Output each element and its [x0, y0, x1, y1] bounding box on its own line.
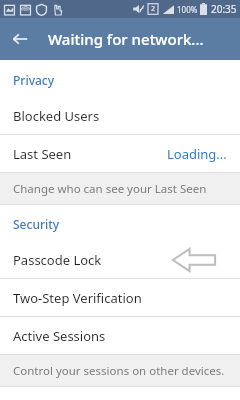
button[interactable]: Two-Step Verification	[0, 279, 240, 316]
button[interactable]: Passcode Lock	[0, 241, 240, 278]
staticText: Privacy	[13, 72, 55, 88]
staticText: Loading...	[167, 145, 227, 163]
button[interactable]: Back	[0, 19, 40, 59]
button[interactable]: Blocked Users	[0, 97, 240, 134]
staticText: 20:35	[211, 2, 237, 16]
staticText: 2	[151, 4, 156, 14]
staticText: Last Seen	[13, 145, 72, 163]
staticText: Change who can see your Last Seen time.	[13, 181, 232, 197]
staticText: Two-Step Verification	[13, 289, 142, 307]
button[interactable]: Last Seen	[0, 135, 240, 172]
staticText: Security	[13, 216, 60, 232]
staticText: Blocked Users	[13, 107, 100, 125]
staticText: 100%	[177, 4, 198, 15]
staticText: Passcode Lock	[13, 251, 102, 269]
staticText: Active Sessions	[13, 327, 106, 345]
staticText: Control your sessions on other devices.	[13, 363, 225, 379]
button[interactable]: Active Sessions	[0, 317, 240, 354]
staticText: Waiting for network...	[48, 29, 204, 49]
